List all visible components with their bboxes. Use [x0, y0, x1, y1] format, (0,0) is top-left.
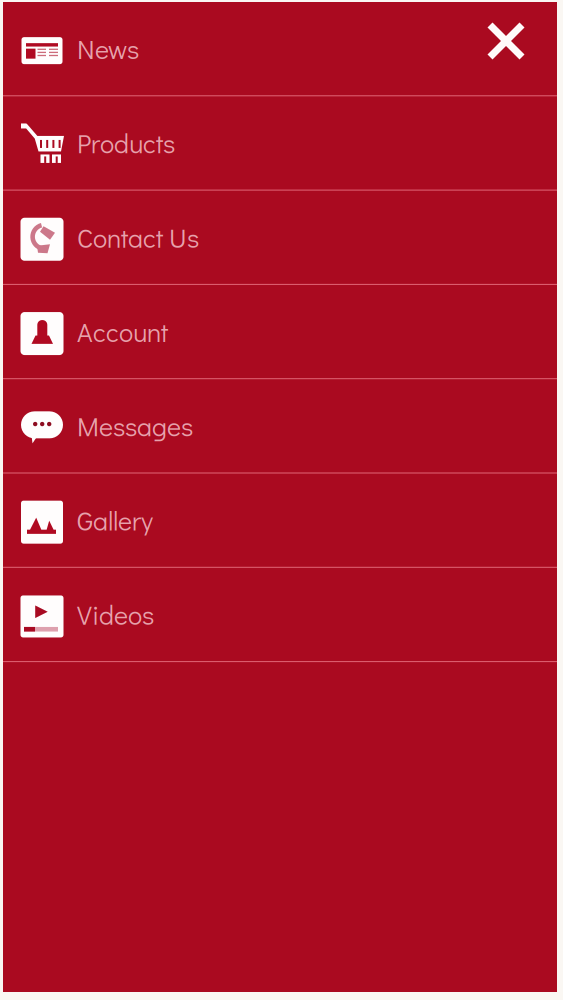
button[interactable]: News — [3, 2, 557, 95]
staticText: News — [77, 31, 139, 66]
button[interactable]: Contact Us — [3, 191, 557, 284]
button[interactable]: Close menu — [475, 10, 537, 72]
staticText: Products — [77, 125, 175, 160]
staticText: Messages — [77, 408, 193, 443]
button[interactable]: Products — [3, 96, 557, 190]
staticText: Videos — [77, 597, 154, 632]
button[interactable]: Videos — [3, 568, 557, 661]
staticText: Gallery — [77, 503, 153, 538]
staticText: Contact Us — [77, 220, 199, 255]
button[interactable]: Account — [3, 285, 557, 378]
button[interactable]: Messages — [3, 379, 557, 472]
staticText: Account — [77, 314, 168, 349]
button[interactable]: Gallery — [3, 473, 557, 567]
